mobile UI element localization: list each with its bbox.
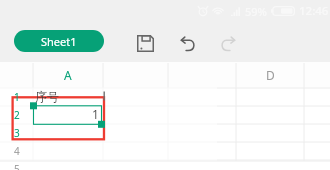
staticText: 5 <box>14 162 20 170</box>
staticText: 1 <box>14 90 20 104</box>
staticText: 1 <box>92 106 99 122</box>
button[interactable]: Sheet1 <box>14 30 104 52</box>
button[interactable]: D <box>236 62 304 88</box>
button[interactable]: 1 <box>0 88 33 106</box>
button[interactable]: A <box>33 62 103 88</box>
staticText: 2 <box>14 108 20 122</box>
button[interactable]: 4 <box>0 142 33 160</box>
button[interactable]: Redo <box>215 30 241 56</box>
button[interactable]: Save <box>132 30 158 56</box>
staticText: 4 <box>14 144 20 158</box>
staticText: 3 <box>14 126 20 140</box>
staticText: 序号 <box>35 89 59 104</box>
button[interactable]: 5 <box>0 160 33 170</box>
button[interactable]: 2 <box>0 106 33 124</box>
staticText: Sheet1 <box>41 34 77 49</box>
button[interactable]: Undo <box>175 30 201 56</box>
staticText: D <box>266 67 275 83</box>
button[interactable]: 3 <box>0 124 33 142</box>
staticText: A <box>64 67 72 83</box>
